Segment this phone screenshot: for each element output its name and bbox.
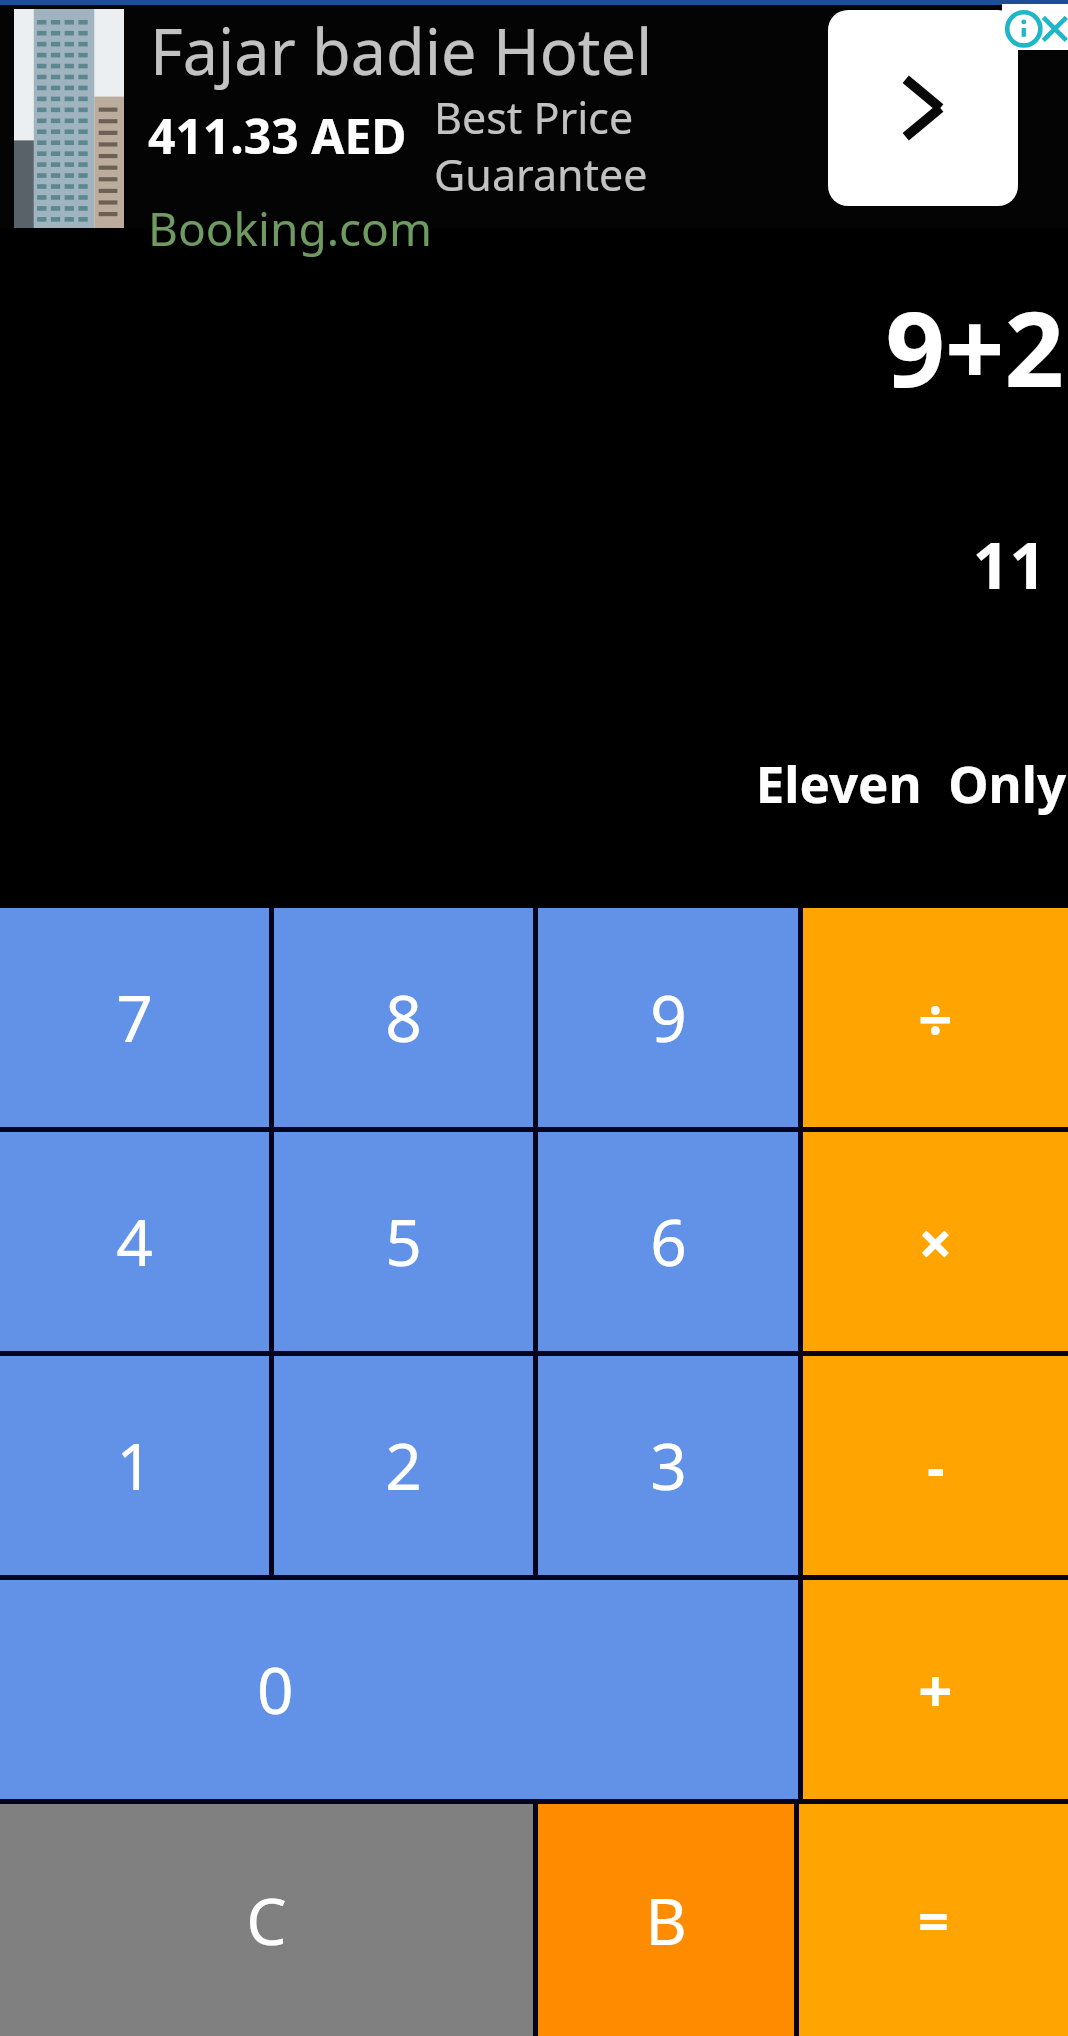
staticText: 411.33 AED <box>148 103 407 168</box>
staticText: 1 <box>116 1422 153 1509</box>
staticText: Guarantee <box>434 145 648 204</box>
button[interactable]: 7 <box>0 908 269 1127</box>
button[interactable]: 2 <box>274 1356 533 1575</box>
staticText: × <box>918 1201 953 1283</box>
staticText: 0 <box>257 1646 294 1733</box>
staticText: = <box>918 1883 949 1957</box>
button[interactable]: 0 <box>0 1580 798 1799</box>
staticText: - <box>927 1429 945 1503</box>
button[interactable]: 4 <box>0 1132 269 1351</box>
staticText: 9+2 <box>0 276 1064 418</box>
staticText: C <box>246 1877 287 1964</box>
staticText: 11 <box>0 521 1046 608</box>
button[interactable]: = <box>799 1804 1068 2036</box>
button[interactable]: 8 <box>274 908 533 1127</box>
staticText: 7 <box>116 974 153 1061</box>
button[interactable]: ÷ <box>803 908 1068 1127</box>
button[interactable]: Fajar badie Hotel <box>0 0 1068 228</box>
staticText: ÷ <box>918 977 953 1059</box>
button[interactable]: 9 <box>538 908 798 1127</box>
button[interactable]: + <box>803 1580 1068 1799</box>
button[interactable]: 6 <box>538 1132 798 1351</box>
staticText: 6 <box>650 1198 687 1285</box>
staticText: + <box>918 1649 953 1731</box>
button[interactable]: 3 <box>538 1356 798 1575</box>
staticText: 9 <box>650 974 687 1061</box>
button[interactable]: 5 <box>274 1132 533 1351</box>
button[interactable]: Ad choices <box>1002 4 1068 50</box>
button[interactable]: - <box>803 1356 1068 1575</box>
staticText: Fajar badie Hotel <box>150 8 653 94</box>
staticText: 5 <box>385 1198 422 1285</box>
staticText: 4 <box>116 1198 153 1285</box>
staticText: Eleven Only <box>0 748 1066 817</box>
staticText: Booking.com <box>148 197 432 260</box>
button[interactable]: 1 <box>0 1356 269 1575</box>
staticText: B <box>645 1877 687 1964</box>
button[interactable]: Open advertisement <box>828 10 1018 206</box>
button[interactable]: B <box>538 1804 794 2036</box>
button[interactable]: C <box>0 1804 533 2036</box>
staticText: 8 <box>385 974 422 1061</box>
staticText: 3 <box>650 1422 687 1509</box>
button[interactable]: × <box>803 1132 1068 1351</box>
staticText: 2 <box>385 1422 422 1509</box>
staticText: Best Price <box>434 88 634 147</box>
